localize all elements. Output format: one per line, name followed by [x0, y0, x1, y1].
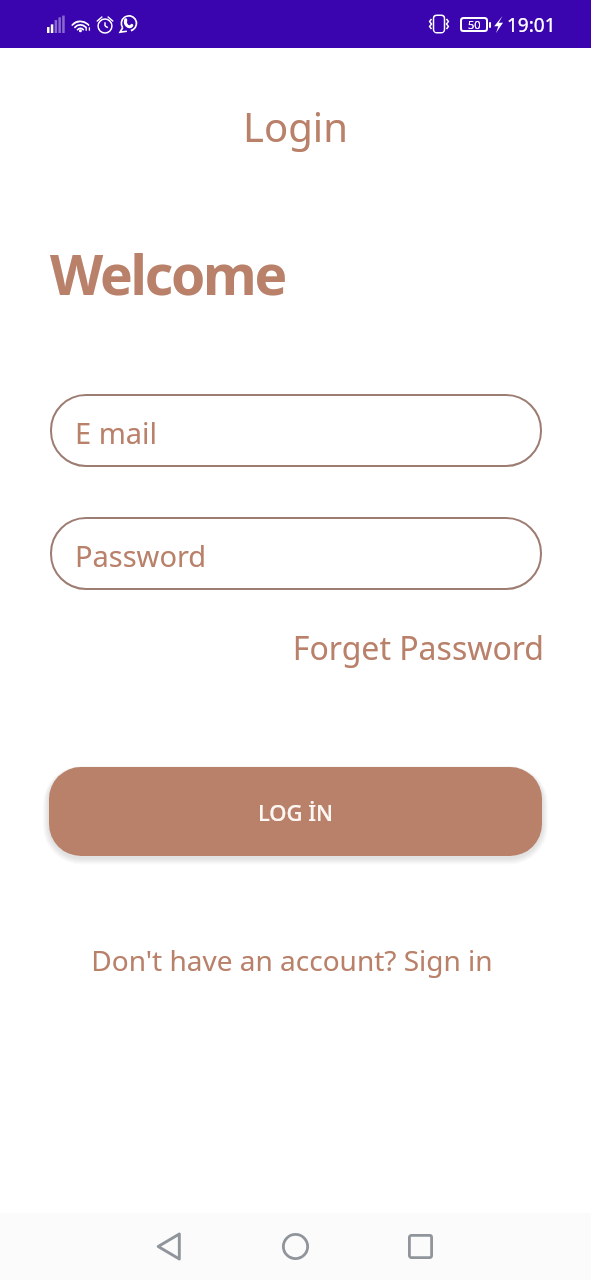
- button[interactable]: E mail: [50, 394, 542, 467]
- staticText: Password: [75, 536, 207, 575]
- staticText: Don't have an account? Sign in: [91, 941, 493, 979]
- button[interactable]: Recent apps: [388, 1214, 453, 1279]
- button[interactable]: Back: [136, 1214, 201, 1279]
- button[interactable]: Home: [263, 1214, 328, 1279]
- staticText: Welcome: [50, 236, 286, 311]
- staticText: Forget Password: [292, 626, 544, 670]
- staticText: 19:01: [507, 12, 556, 38]
- button[interactable]: Don't have an account? Sign in: [89, 937, 494, 983]
- staticText: E mail: [75, 413, 158, 452]
- staticText: Login: [0, 99, 591, 153]
- staticText: 50: [468, 17, 481, 32]
- button[interactable]: Forget Password: [289, 622, 544, 670]
- button[interactable]: Password: [50, 517, 542, 590]
- staticText: LOG İN: [258, 797, 334, 827]
- button[interactable]: LOG İN: [49, 767, 542, 856]
